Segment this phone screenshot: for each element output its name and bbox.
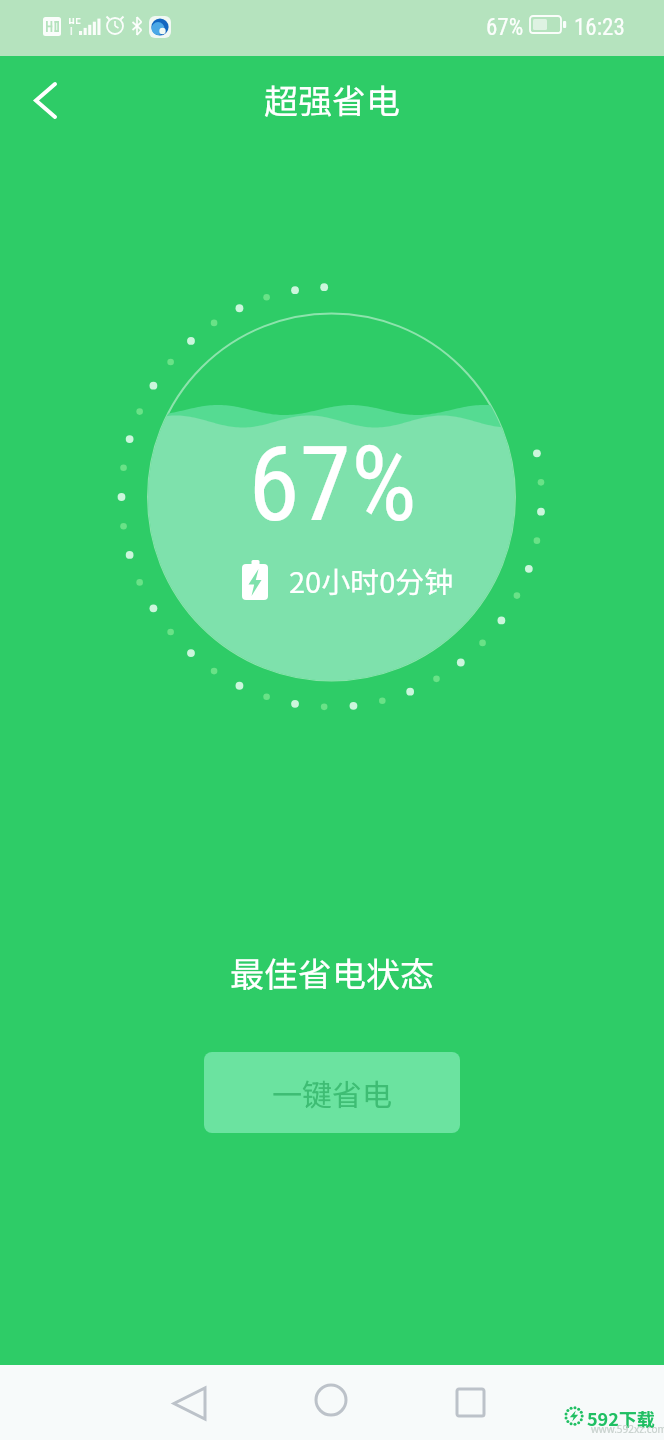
staticText: 20小时0分钟 xyxy=(289,559,454,601)
button[interactable]: Home xyxy=(301,1370,361,1430)
staticText: 超强省电 xyxy=(264,75,400,124)
button[interactable]: 一键省电 xyxy=(204,1052,460,1133)
staticText: 16:23 xyxy=(574,14,625,41)
staticText: 592下载 xyxy=(587,1405,655,1431)
staticText: 最佳省电状态 xyxy=(230,948,434,992)
button[interactable]: Back xyxy=(18,72,74,128)
staticText: 67% xyxy=(248,424,417,544)
button[interactable]: Recents xyxy=(440,1371,500,1427)
button[interactable]: Back xyxy=(160,1371,220,1427)
staticText: www.592xz.com xyxy=(591,1422,664,1436)
staticText: 一键省电 xyxy=(272,1071,392,1114)
staticText: 67% xyxy=(486,14,524,41)
